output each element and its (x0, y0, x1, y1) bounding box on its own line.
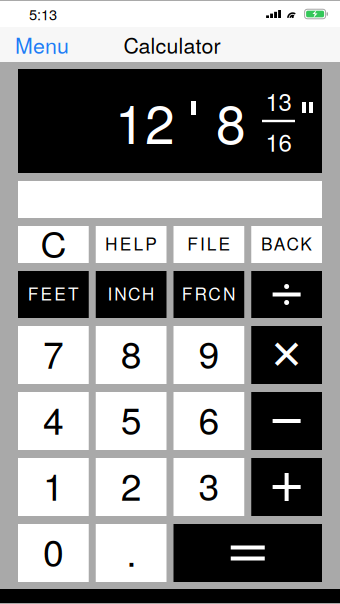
button[interactable]: FEET (18, 271, 89, 318)
staticText: 8 (121, 326, 142, 379)
staticText: ✕ (270, 332, 304, 378)
button[interactable]: 6 (173, 392, 244, 450)
staticText: 7 (43, 326, 64, 379)
staticText: INCH (107, 281, 155, 305)
staticText: 6 (198, 392, 219, 445)
button[interactable]: INCH (96, 271, 167, 318)
button[interactable]: 3 (173, 458, 244, 516)
staticText: FRCN (182, 281, 236, 305)
button[interactable]: FILE (173, 226, 244, 263)
button[interactable]: 5 (96, 392, 167, 450)
button[interactable]: Multiply (251, 326, 322, 384)
staticText: 5:13 (29, 3, 57, 24)
staticText: . (126, 524, 136, 577)
button[interactable]: 0 (18, 524, 89, 582)
button[interactable]: Plus (251, 458, 322, 516)
staticText: BACK (261, 231, 312, 255)
staticText: HELP (105, 231, 157, 255)
staticText: 12 (115, 83, 175, 159)
staticText: 9 (198, 326, 219, 379)
staticText: FEET (28, 281, 79, 305)
staticText: 16 (265, 124, 291, 159)
staticText: 3 (198, 458, 219, 511)
staticText: 8 (216, 83, 246, 159)
staticText: Menu (15, 29, 69, 60)
staticText: FILE (187, 231, 231, 255)
button[interactable]: C (18, 226, 89, 263)
button[interactable]: Divide (251, 271, 322, 318)
staticText: 0 (43, 524, 64, 577)
button[interactable]: Menu (0, 27, 81, 62)
staticText: 4 (43, 392, 64, 445)
button[interactable]: 2 (96, 458, 167, 516)
button[interactable]: FRCN (173, 271, 244, 318)
staticText: 5 (121, 392, 142, 445)
button[interactable]: BACK (251, 226, 322, 263)
button[interactable]: 4 (18, 392, 89, 450)
staticText: Calculator (123, 29, 220, 60)
button[interactable]: . (96, 524, 167, 582)
button[interactable]: 8 (96, 326, 167, 384)
button[interactable]: 1 (18, 458, 89, 516)
button[interactable]: 9 (173, 326, 244, 384)
staticText: 13 (265, 83, 291, 118)
button[interactable]: Equals (173, 524, 322, 582)
button[interactable]: 7 (18, 326, 89, 384)
button[interactable]: Minus (251, 392, 322, 450)
staticText: 1 (43, 458, 64, 511)
staticText: 2 (121, 458, 142, 511)
button[interactable]: HELP (96, 226, 167, 263)
staticText: C (40, 217, 66, 268)
